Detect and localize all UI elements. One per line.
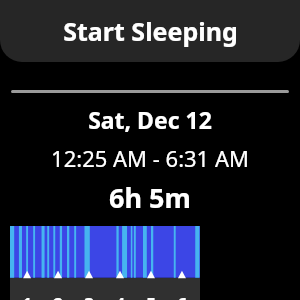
- staticText: Start Sleeping: [63, 14, 238, 48]
- staticText: 6: [177, 293, 187, 300]
- button[interactable]: Sleep stages chart: [10, 226, 200, 300]
- staticText: 1: [22, 293, 32, 300]
- staticText: 4: [115, 293, 125, 300]
- staticText: 5: [146, 293, 156, 300]
- staticText: 2: [53, 293, 63, 300]
- staticText: 3: [84, 293, 94, 300]
- staticText: Sat, Dec 12: [88, 104, 212, 135]
- staticText: 12:25 AM - 6:31 AM: [51, 143, 249, 173]
- button[interactable]: Start Sleeping: [0, 0, 300, 62]
- staticText: 6h 5m: [109, 179, 191, 216]
